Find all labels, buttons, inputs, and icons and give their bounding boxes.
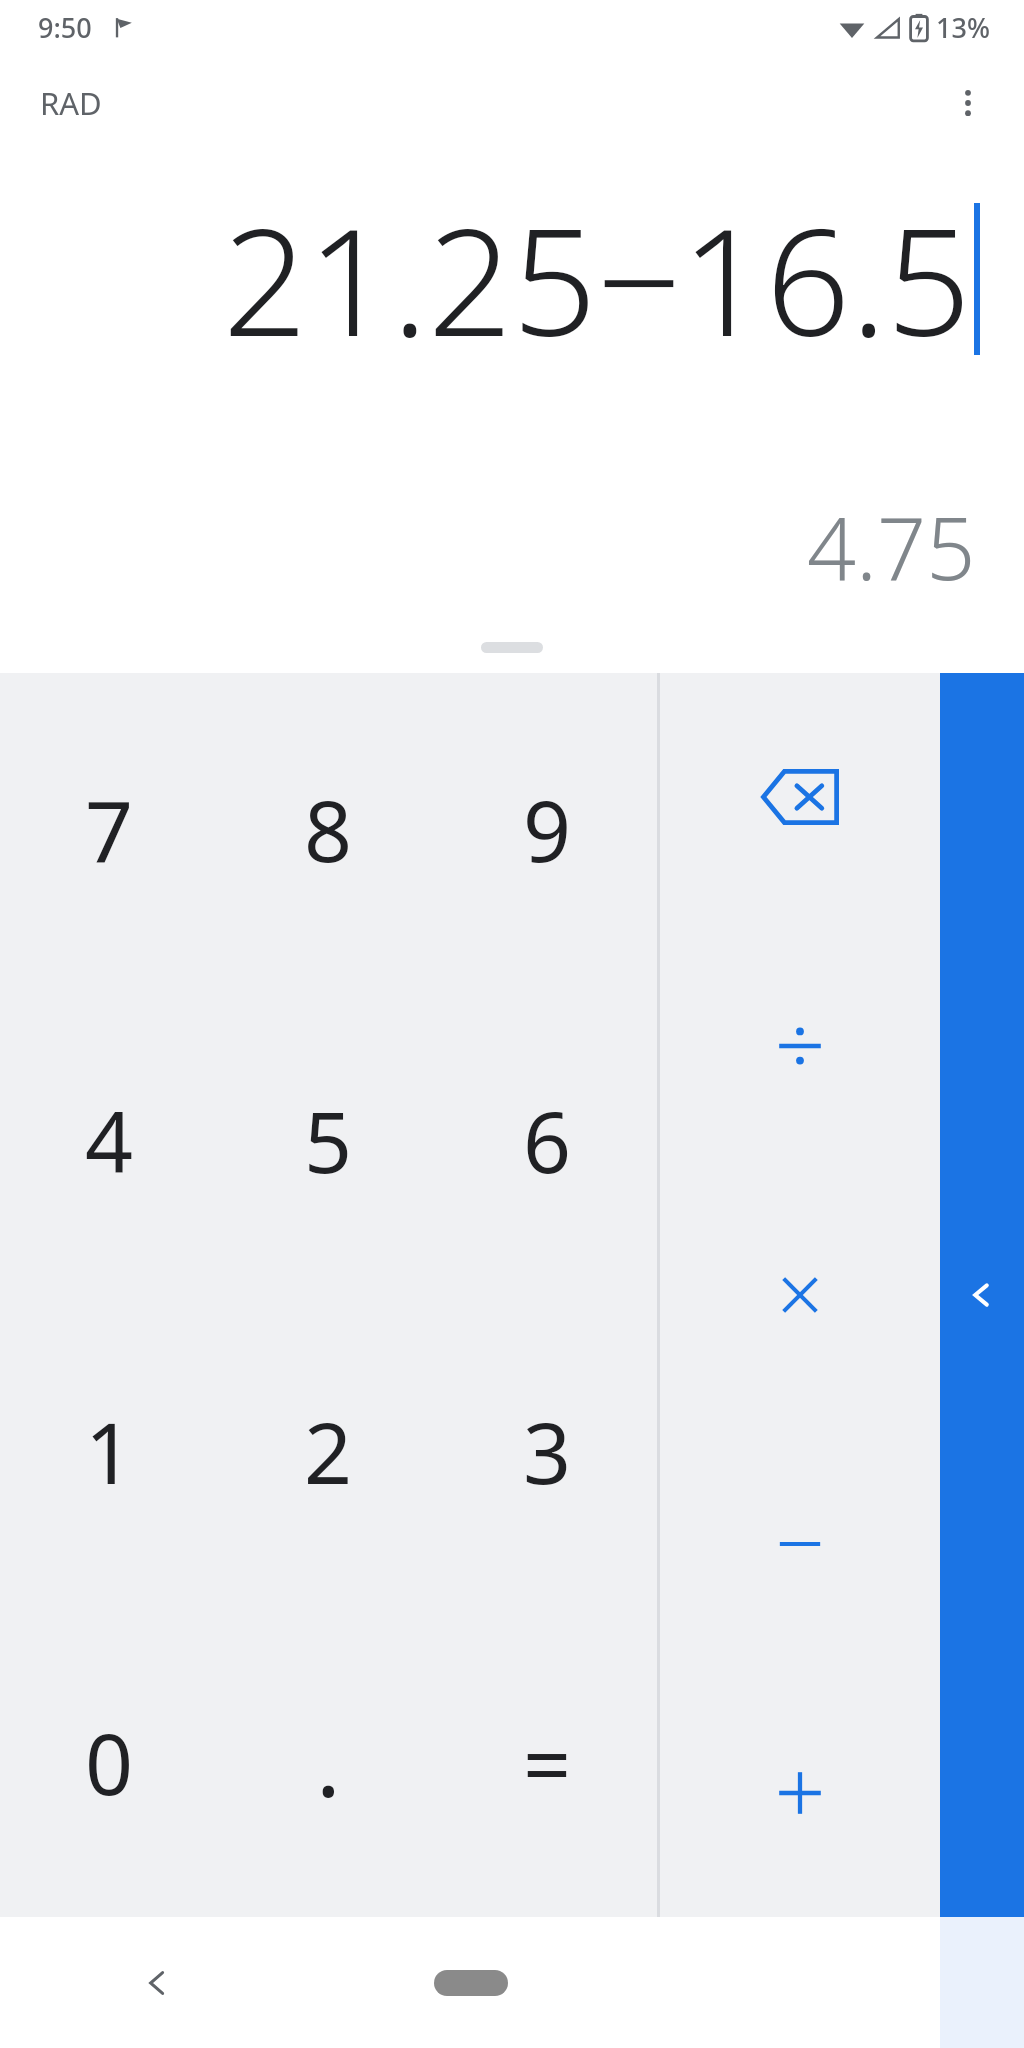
button[interactable]: 7 bbox=[0, 673, 219, 984]
button[interactable]: 2 bbox=[219, 1295, 438, 1606]
staticText: 21.25−16.5 bbox=[222, 178, 971, 380]
button[interactable]: Divide bbox=[660, 921, 940, 1170]
staticText: 5 bbox=[304, 1083, 353, 1197]
button[interactable]: Back bbox=[0, 1917, 314, 2048]
button[interactable]: . bbox=[219, 1606, 438, 1917]
button[interactable]: 5 bbox=[219, 984, 438, 1295]
staticText: 7 bbox=[85, 772, 134, 886]
staticText: 4 bbox=[85, 1083, 134, 1197]
button[interactable]: RAD bbox=[26, 72, 116, 134]
button[interactable]: Multiply bbox=[660, 1170, 940, 1419]
staticText: 3 bbox=[523, 1394, 572, 1508]
button[interactable]: Open advanced pad bbox=[940, 673, 1024, 1917]
staticText: 9:50 bbox=[38, 9, 92, 46]
button[interactable]: 1 bbox=[0, 1295, 219, 1606]
staticText: 4.75 bbox=[807, 488, 976, 605]
staticText: 2 bbox=[304, 1394, 353, 1508]
staticText: 13% bbox=[936, 9, 990, 46]
button[interactable]: 0 bbox=[0, 1606, 219, 1917]
staticText: 6 bbox=[523, 1083, 572, 1197]
staticText: 0 bbox=[85, 1705, 134, 1819]
staticText: 1 bbox=[85, 1394, 134, 1508]
staticText: RAD bbox=[40, 82, 102, 124]
button[interactable]: 4 bbox=[0, 984, 219, 1295]
staticText: 8 bbox=[304, 772, 353, 886]
button[interactable]: 3 bbox=[438, 1295, 657, 1606]
button[interactable]: 9 bbox=[438, 673, 657, 984]
button[interactable]: 6 bbox=[438, 984, 657, 1295]
staticText: = bbox=[523, 1705, 572, 1819]
button[interactable]: Home bbox=[314, 1917, 627, 2048]
button[interactable]: 8 bbox=[219, 673, 438, 984]
staticText: 9 bbox=[523, 772, 572, 886]
button[interactable]: = bbox=[438, 1606, 657, 1917]
button[interactable]: More options bbox=[932, 67, 1004, 139]
button[interactable]: Delete bbox=[660, 673, 940, 921]
staticText: . bbox=[316, 1699, 341, 1824]
button[interactable]: Subtract bbox=[660, 1419, 940, 1668]
button[interactable]: Add bbox=[660, 1668, 940, 1917]
button[interactable]: Expand history bbox=[481, 642, 543, 653]
